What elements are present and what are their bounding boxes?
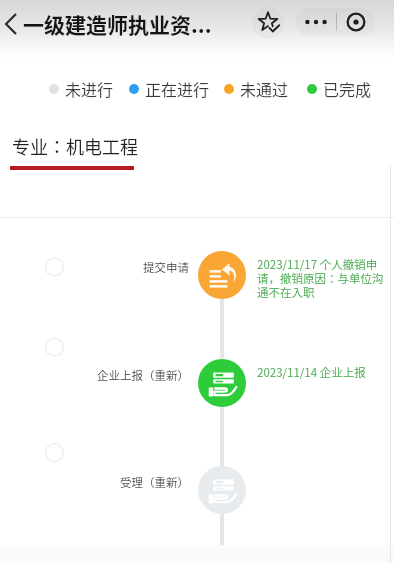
button[interactable]: 专业：机电工程 (12, 133, 138, 159)
staticText: 已完成 (323, 77, 372, 100)
button[interactable]: Favorite (252, 7, 284, 39)
button[interactable]: Close (337, 8, 375, 36)
staticText: 正在进行 (145, 77, 210, 100)
button[interactable]: 受理（重新） (198, 466, 246, 514)
staticText: 一级建造师执业资... (23, 9, 212, 39)
button[interactable]: 受理（重新） (70, 474, 189, 491)
button[interactable]: 企业上报（重新） (198, 359, 246, 407)
staticText: 未通过 (240, 77, 289, 100)
button[interactable]: 提交申请 (198, 251, 246, 299)
button[interactable]: Back (0, 4, 24, 44)
button[interactable]: 提交申请 (70, 259, 189, 276)
staticText: 2023/11/14 企业上报 (257, 364, 388, 381)
button[interactable]: 企业上报（重新） (70, 367, 189, 384)
button[interactable]: More options (295, 8, 336, 36)
staticText: 2023/11/17 个人撤销申请，撤销原因：与单位沟通不在入职 (257, 256, 388, 301)
staticText: 未进行 (65, 77, 114, 100)
